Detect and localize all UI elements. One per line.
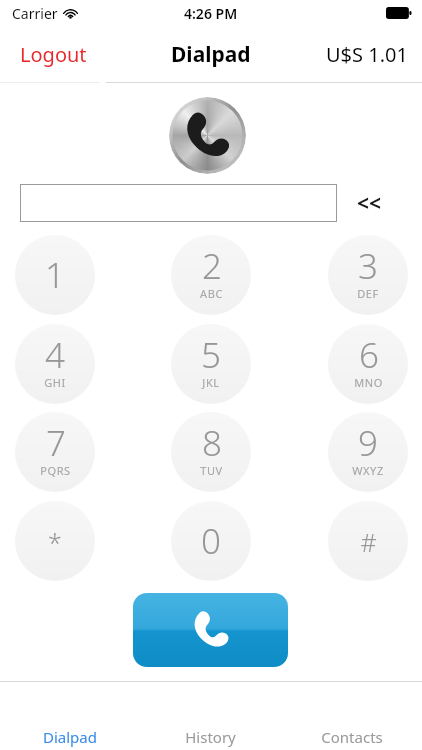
staticText: 4:26 PM xyxy=(184,4,238,23)
button[interactable]: Dialpad xyxy=(0,724,140,750)
button[interactable]: 1 xyxy=(15,235,95,315)
button[interactable]: App logo xyxy=(169,97,246,174)
staticText: # xyxy=(360,525,377,559)
staticText: 9 xyxy=(358,419,378,467)
staticText: U$S 1.01 xyxy=(326,41,408,68)
button[interactable]: 8 xyxy=(171,412,251,492)
staticText: 0 xyxy=(201,517,221,565)
button[interactable]: 6 xyxy=(328,324,408,404)
staticText: History xyxy=(185,727,236,747)
staticText: 3 xyxy=(358,242,378,290)
staticText: DEF xyxy=(357,286,379,301)
staticText: PQRS xyxy=(40,463,71,478)
staticText: 1 xyxy=(45,251,65,299)
button[interactable] xyxy=(20,184,337,222)
staticText: TUV xyxy=(200,463,223,478)
staticText: 2 xyxy=(202,242,222,290)
staticText: WXYZ xyxy=(352,463,384,478)
staticText: Dialpad xyxy=(43,727,97,747)
staticText: Contacts xyxy=(321,727,383,747)
staticText: Logout xyxy=(20,41,87,68)
staticText: Dialpad xyxy=(171,40,251,69)
staticText: 8 xyxy=(202,419,222,467)
button[interactable]: 2 xyxy=(171,235,251,315)
button[interactable]: 7 xyxy=(15,412,95,492)
staticText: Carrier xyxy=(12,4,58,23)
staticText: 5 xyxy=(201,331,221,379)
staticText: GHI xyxy=(44,375,66,390)
button[interactable]: Call xyxy=(133,593,288,667)
staticText: 6 xyxy=(359,331,379,379)
button[interactable]: History xyxy=(140,724,281,750)
button[interactable]: * xyxy=(15,501,95,581)
button[interactable]: Contacts xyxy=(281,724,422,750)
staticText: * xyxy=(48,525,62,559)
button[interactable]: Logout xyxy=(0,31,107,78)
staticText: JKL xyxy=(202,375,220,390)
button[interactable]: Backspace xyxy=(344,184,394,222)
staticText: 4 xyxy=(45,331,65,379)
button[interactable]: U$S 1.01 xyxy=(312,31,422,78)
button[interactable]: 4 xyxy=(15,324,95,404)
staticText: << xyxy=(357,189,382,218)
staticText: MNO xyxy=(354,375,383,390)
button[interactable]: 3 xyxy=(328,235,408,315)
button[interactable]: # xyxy=(328,501,408,581)
staticText: ABC xyxy=(200,286,223,301)
button[interactable]: 5 xyxy=(171,324,251,404)
button[interactable]: 9 xyxy=(328,412,408,492)
staticText: 7 xyxy=(46,419,66,467)
button[interactable]: 0 xyxy=(171,501,251,581)
